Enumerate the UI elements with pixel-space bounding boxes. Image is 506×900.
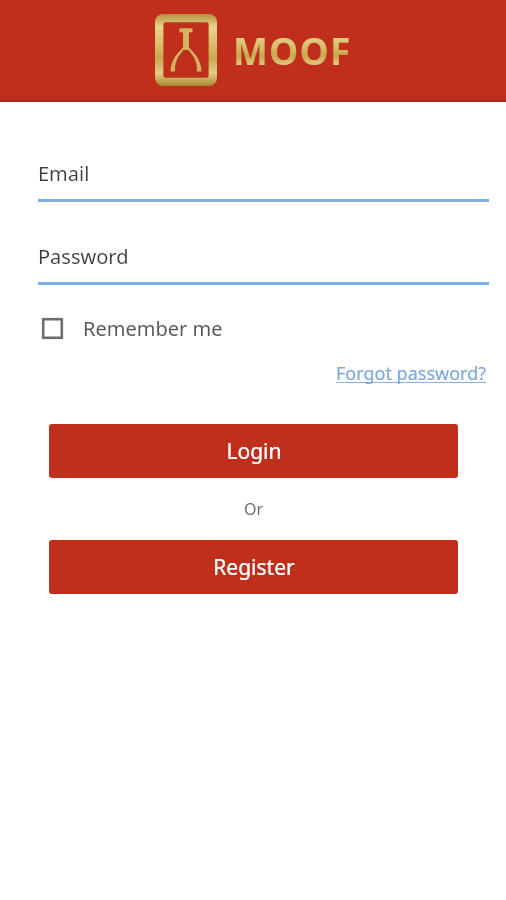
staticText: Register (213, 553, 295, 582)
button[interactable]: Remember me (40, 311, 225, 346)
staticText: Remember me (83, 315, 223, 342)
other: MOOF logo (155, 14, 217, 86)
staticText: Email (38, 160, 90, 187)
staticText: Or (244, 498, 264, 520)
staticText: Login (226, 437, 282, 466)
button[interactable]: Login (49, 424, 458, 478)
staticText: Password (38, 243, 129, 270)
button[interactable]: Forgot password? (334, 358, 489, 389)
button[interactable]: Register (49, 540, 458, 594)
button[interactable]: Email (38, 160, 489, 202)
button[interactable]: Password (38, 243, 489, 285)
staticText: MOOF (233, 25, 352, 75)
staticText: Forgot password? (336, 361, 487, 386)
